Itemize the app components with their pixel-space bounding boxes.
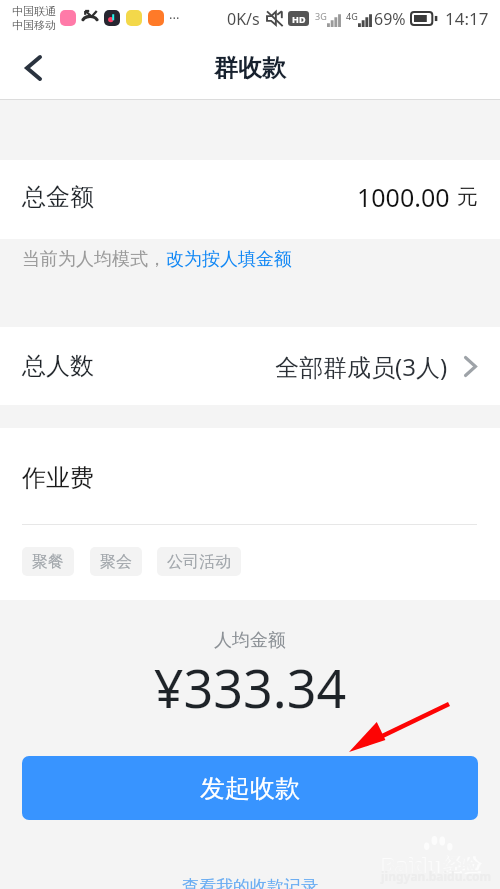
button[interactable]: 改为按人填金额 <box>166 248 292 271</box>
staticText: 聚会 <box>100 552 132 572</box>
staticText: 0K/s <box>227 8 260 30</box>
button[interactable]: 总金额 <box>0 160 500 239</box>
staticText: 发起收款 <box>200 773 300 804</box>
staticText: 群收款 <box>214 53 286 83</box>
button[interactable]: 聚餐 <box>22 547 74 576</box>
button[interactable]: Back <box>9 44 57 92</box>
staticText: ··· <box>169 9 180 27</box>
staticText: 经验 <box>443 854 481 878</box>
staticText: 聚餐 <box>32 552 64 572</box>
staticText: 3G <box>315 10 327 22</box>
staticText: 经验 <box>442 854 478 877</box>
staticText: 总金额 <box>22 182 94 212</box>
button[interactable]: 聚会 <box>90 547 142 576</box>
staticText: 公司活动 <box>167 552 231 572</box>
button[interactable]: 总人数 <box>0 327 500 405</box>
staticText: HD <box>292 13 306 25</box>
staticText: 中国联通 <box>12 4 56 18</box>
staticText: 当前为人均模式， <box>22 248 166 271</box>
staticText: jingyan.baidu.com <box>381 868 492 884</box>
staticText: 中国移动 <box>12 18 56 32</box>
staticText: 4G <box>346 10 358 22</box>
button[interactable]: 查看我的收款记录 <box>0 876 500 889</box>
staticText: 元 <box>457 184 478 210</box>
staticText: ¥333.34 <box>0 652 500 723</box>
staticText: 69% <box>374 8 406 30</box>
staticText: 改为按人填金额 <box>166 248 292 271</box>
staticText: 查看我的收款记录 <box>0 876 500 889</box>
button[interactable]: 公司活动 <box>157 547 241 576</box>
button[interactable]: 发起收款 <box>22 756 478 820</box>
staticText: 人均金额 <box>0 629 500 652</box>
staticText: 总人数 <box>22 351 94 381</box>
staticText: 14:17 <box>445 7 489 30</box>
staticText: 1000.00 <box>357 180 450 214</box>
staticText: 作业费 <box>22 463 94 493</box>
staticText: 全部群成员(3人) <box>275 350 448 383</box>
